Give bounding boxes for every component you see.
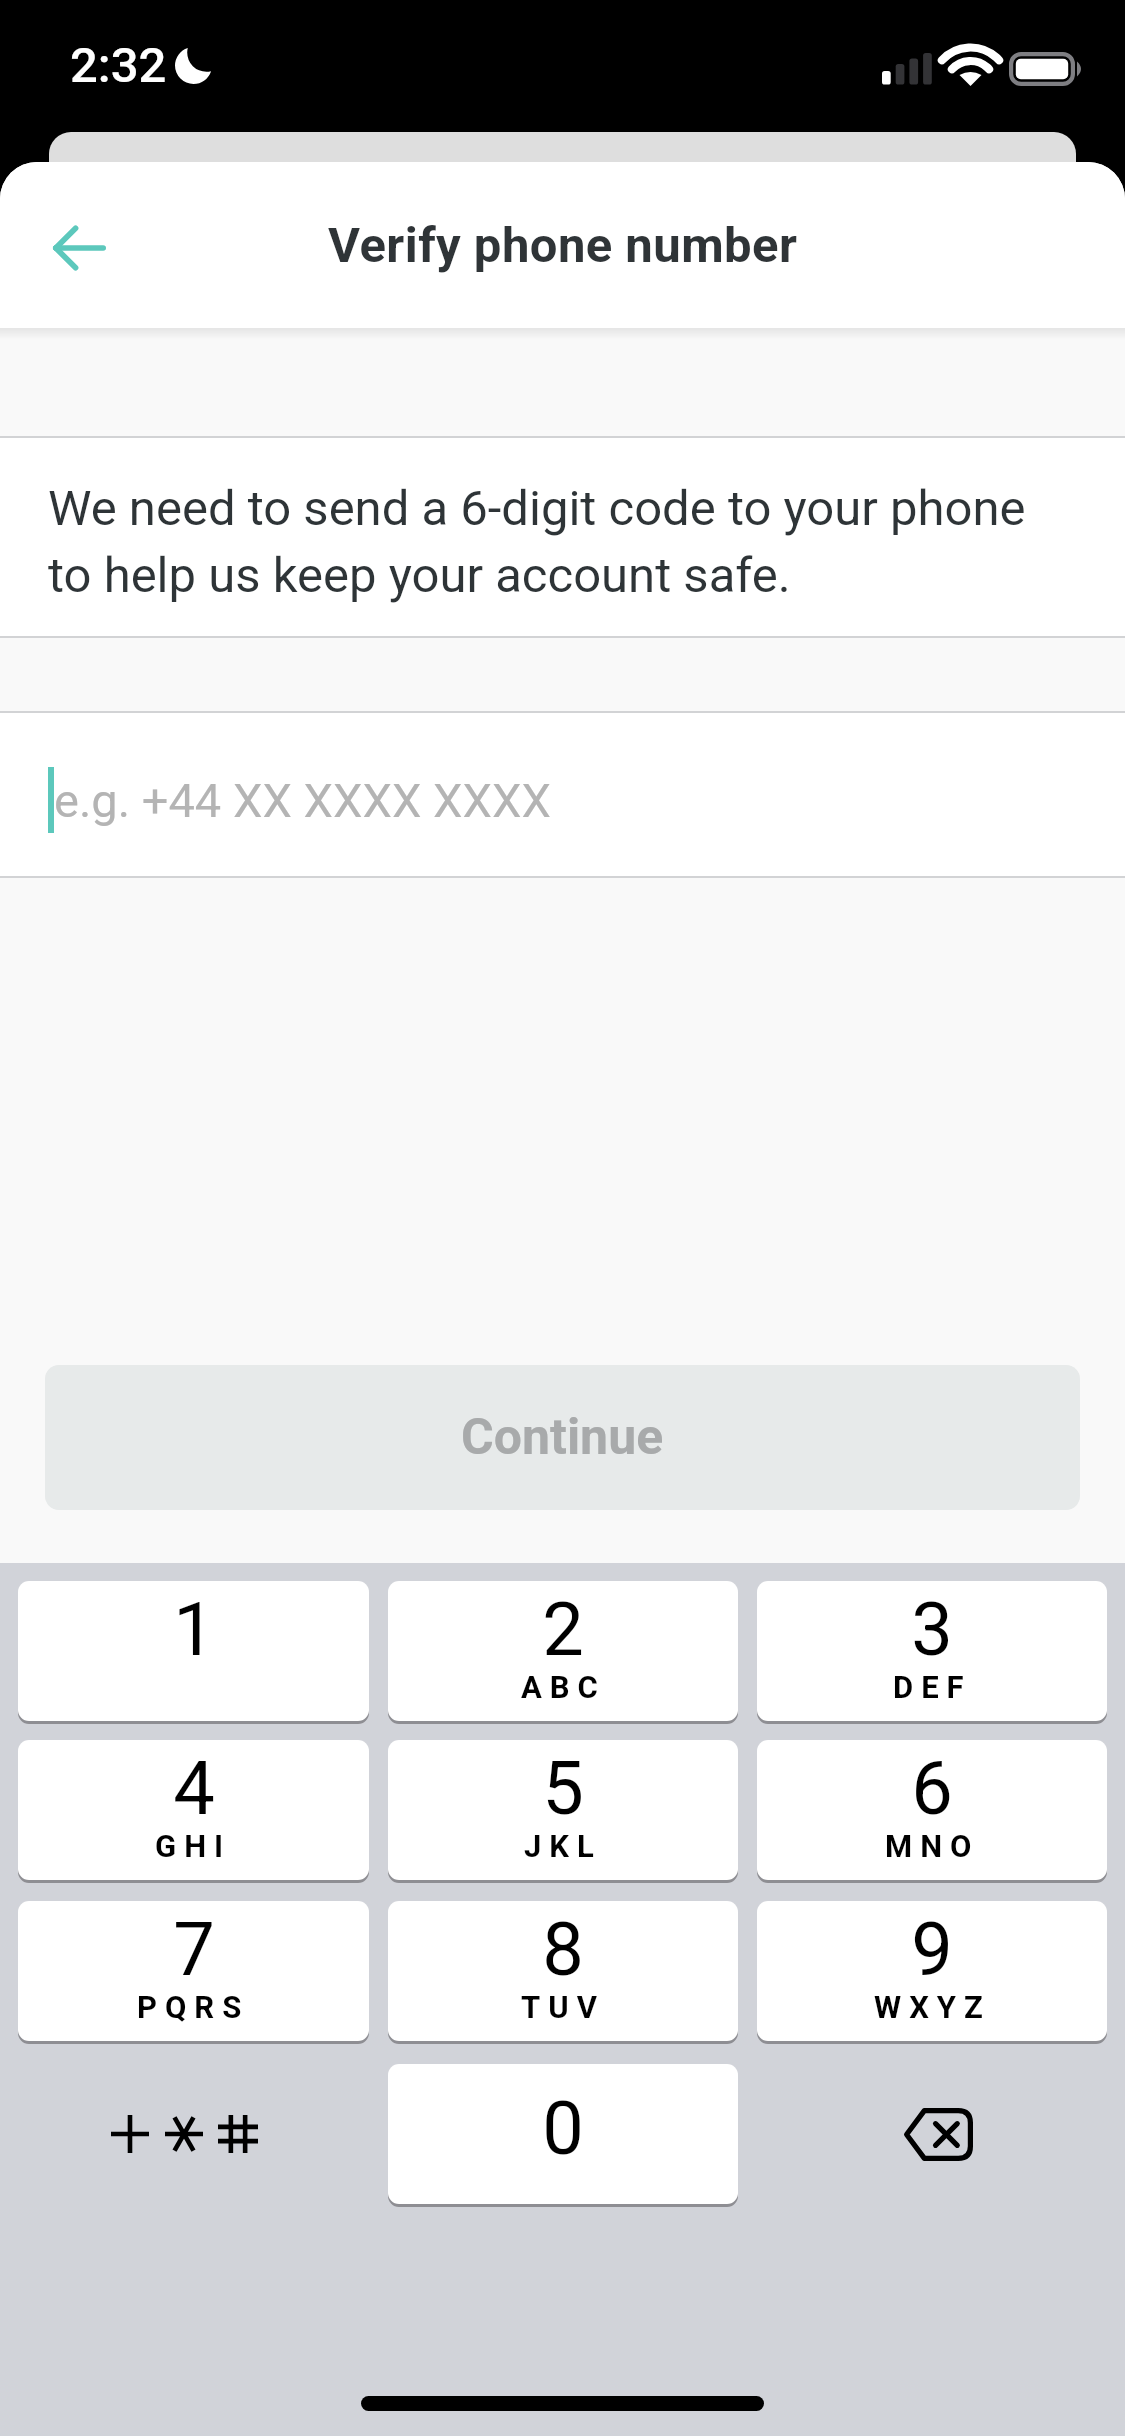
- staticText: 6: [911, 1745, 953, 1832]
- button[interactable]: Plus, asterisk and hash symbols: [18, 2064, 369, 2204]
- staticText: MNO: [885, 1828, 980, 1864]
- staticText: PQRS: [137, 1989, 250, 2025]
- button[interactable]: e.g. +44 XX XXXX XXXX: [0, 713, 1125, 876]
- staticText: 1: [173, 1586, 215, 1673]
- staticText: e.g. +44 XX XXXX XXXX: [54, 773, 551, 828]
- button[interactable]: Backspace: [757, 2064, 1107, 2204]
- staticText: ABC: [521, 1669, 606, 1705]
- button[interactable]: 2: [388, 1581, 738, 1721]
- staticText: TUV: [521, 1989, 605, 2025]
- button[interactable]: 6: [757, 1740, 1107, 1880]
- button[interactable]: 5: [388, 1740, 738, 1880]
- staticText: Continue: [461, 1408, 664, 1467]
- staticText: 4: [173, 1745, 215, 1832]
- staticText: 2:32: [70, 37, 167, 94]
- button[interactable]: 7: [18, 1901, 369, 2041]
- button[interactable]: Continue: [45, 1365, 1080, 1510]
- staticText: 9: [911, 1906, 953, 1993]
- staticText: 3: [911, 1586, 953, 1673]
- staticText: We need to send a 6-digit code to your p…: [48, 480, 1065, 604]
- staticText: WXYZ: [874, 1989, 991, 2025]
- button[interactable]: 3: [757, 1581, 1107, 1721]
- button[interactable]: Back: [26, 195, 126, 295]
- staticText: Verify phone number: [328, 217, 798, 274]
- button[interactable]: 1: [18, 1581, 369, 1721]
- button[interactable]: 9: [757, 1901, 1107, 2041]
- staticText: 8: [542, 1906, 584, 1993]
- button[interactable]: 8: [388, 1901, 738, 2041]
- button[interactable]: 4: [18, 1740, 369, 1880]
- staticText: GHI: [155, 1828, 232, 1864]
- staticText: 2: [542, 1586, 584, 1673]
- staticText: 7: [173, 1906, 215, 1993]
- staticText: 0: [542, 2085, 584, 2172]
- staticText: JKL: [524, 1828, 602, 1864]
- button[interactable]: 0: [388, 2064, 738, 2204]
- staticText: DEF: [893, 1669, 972, 1705]
- staticText: 5: [542, 1745, 584, 1832]
